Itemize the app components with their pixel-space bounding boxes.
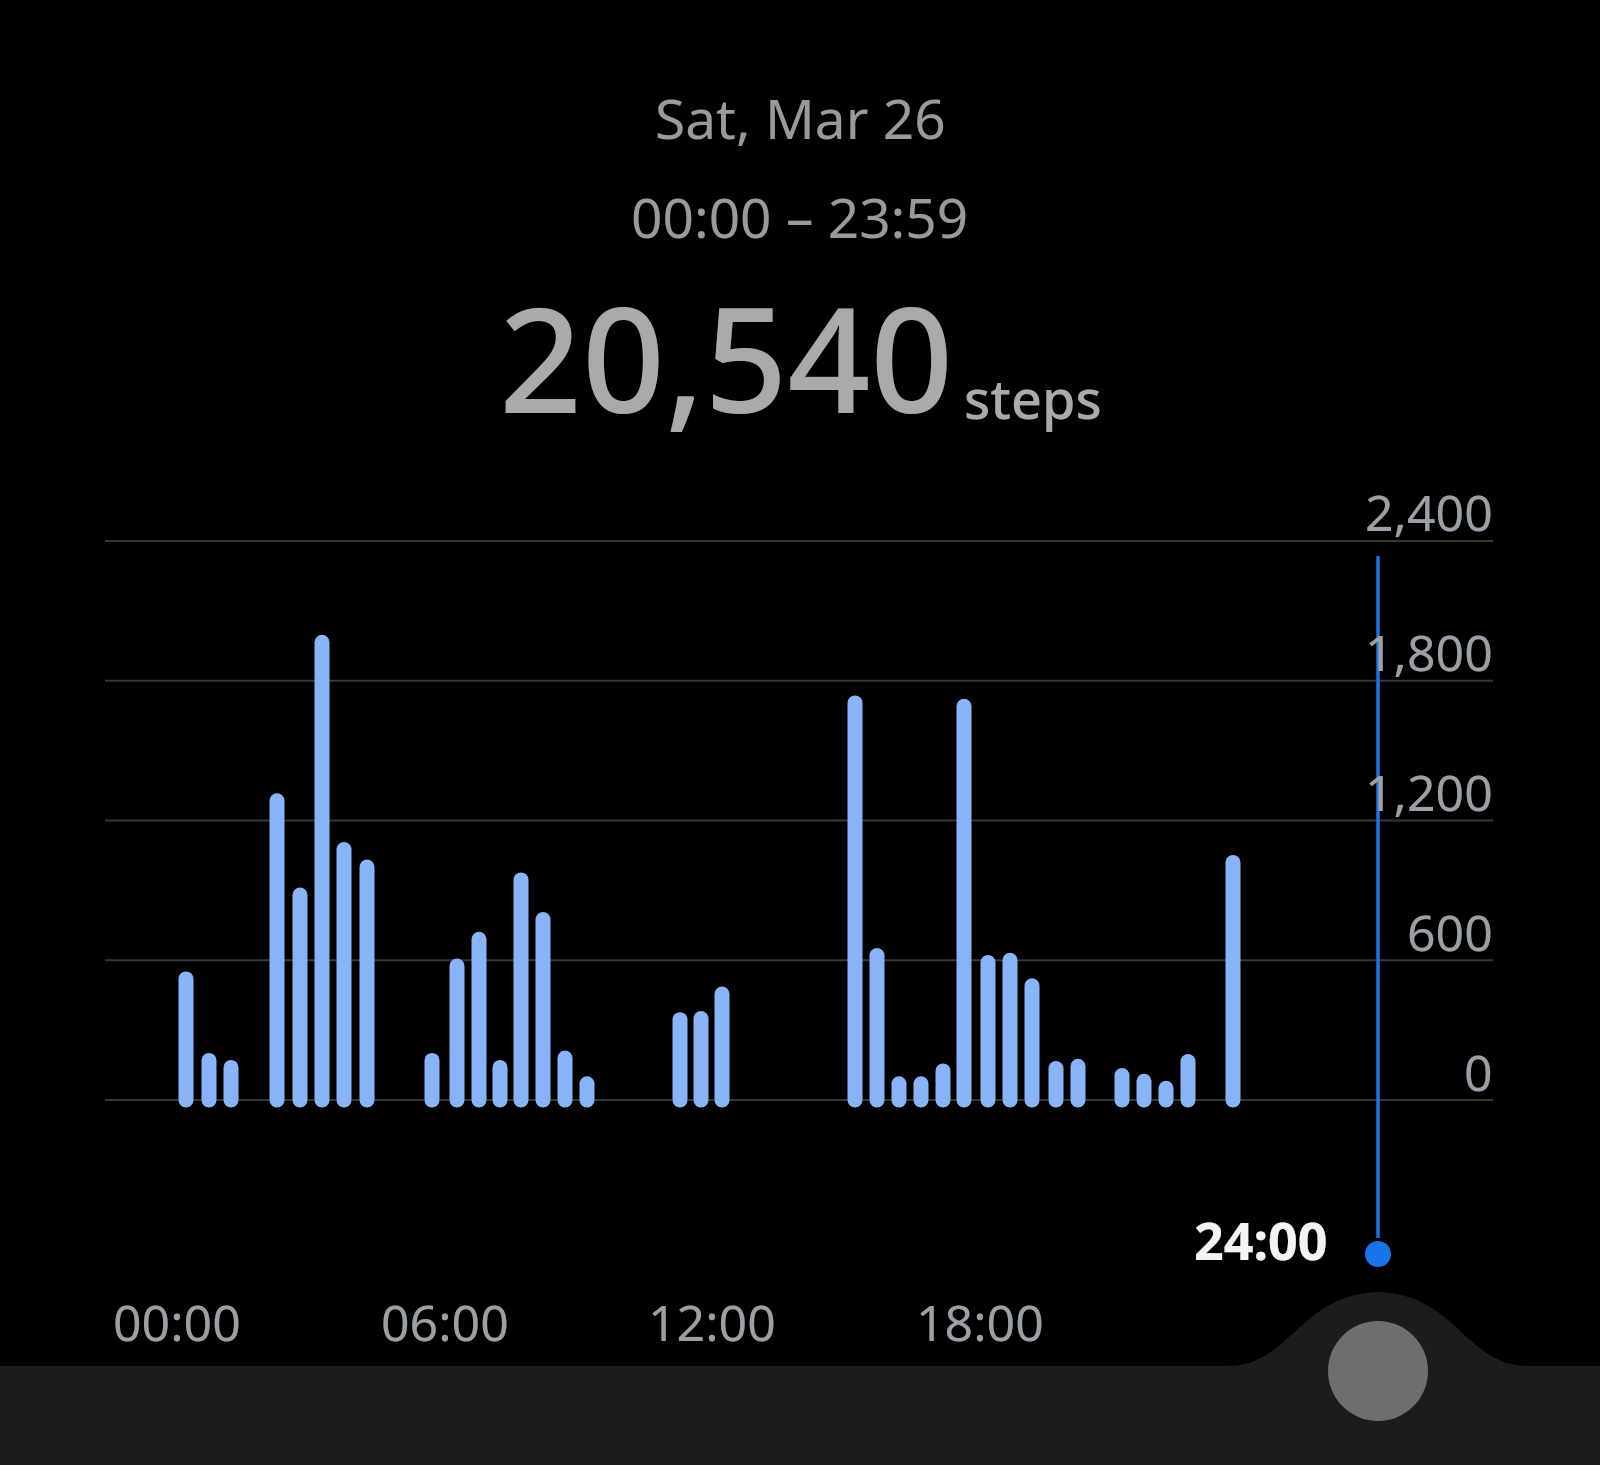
staticText: 00:00 – 23:59 (631, 179, 969, 254)
staticText: 12:00 (648, 1288, 776, 1356)
staticText: 600 (1407, 898, 1493, 966)
staticText: 0 (1464, 1038, 1493, 1106)
button[interactable]: Add (1328, 1321, 1428, 1421)
staticText: 24:00 (1194, 1204, 1328, 1275)
staticText: 1,200 (1365, 758, 1493, 826)
staticText: steps (964, 361, 1102, 435)
staticText: 2,400 (1365, 478, 1493, 546)
staticText: Sat, Mar 26 (655, 80, 946, 155)
staticText: 20,540 (499, 258, 954, 455)
staticText: 06:00 (381, 1288, 509, 1356)
staticText: 00:00 (113, 1288, 241, 1356)
staticText: 18:00 (916, 1288, 1044, 1356)
staticText: 1,800 (1365, 618, 1493, 686)
